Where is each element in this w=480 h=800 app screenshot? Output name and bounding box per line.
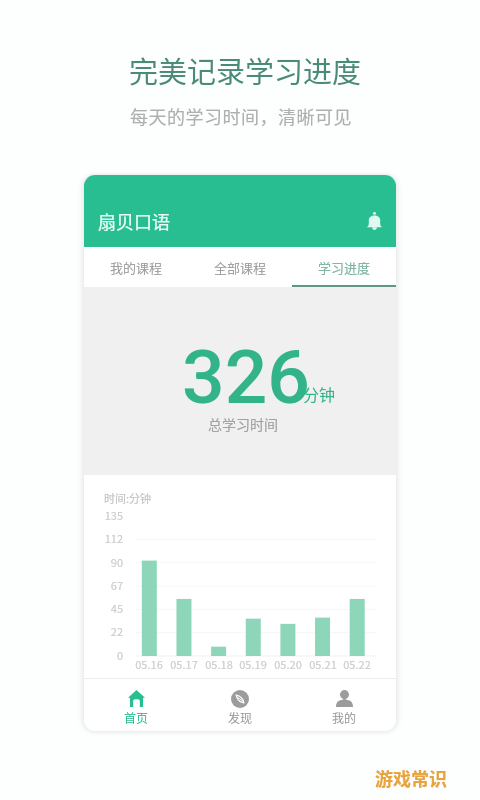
staticText: 326: [182, 333, 310, 421]
staticText: 每天的学习时间，清晰可见: [130, 103, 352, 129]
staticText: 05.22: [339, 656, 375, 672]
button[interactable]: 学习进度: [292, 247, 396, 287]
staticText: 05.20: [270, 656, 306, 672]
staticText: 67: [88, 577, 123, 593]
staticText: 分钟: [303, 382, 336, 405]
button[interactable]: 我的课程: [84, 247, 188, 287]
staticText: 0: [88, 647, 123, 663]
staticText: 05.18: [201, 656, 237, 672]
staticText: 我的: [332, 709, 357, 726]
staticText: 05.19: [235, 656, 271, 672]
staticText: 时间:分钟: [104, 490, 152, 506]
staticText: 90: [88, 554, 123, 570]
staticText: 游戏常识: [375, 765, 447, 791]
staticText: 05.21: [305, 656, 341, 672]
button[interactable]: 我的: [292, 678, 396, 731]
staticText: 学习进度: [318, 258, 371, 277]
staticText: 22: [88, 623, 123, 639]
staticText: 135: [88, 507, 123, 523]
button[interactable]: 首页: [84, 678, 188, 731]
staticText: 05.16: [131, 656, 167, 672]
staticText: 全部课程: [214, 258, 267, 277]
staticText: 扇贝口语: [98, 208, 170, 234]
button[interactable]: Notifications: [360, 207, 389, 236]
staticText: 首页: [124, 709, 149, 726]
button[interactable]: 全部课程: [188, 247, 292, 287]
staticText: 发现: [228, 709, 253, 726]
staticText: 112: [88, 530, 123, 546]
staticText: 45: [88, 600, 123, 616]
staticText: 总学习时间: [208, 414, 278, 434]
staticText: 我的课程: [110, 258, 163, 277]
staticText: 完美记录学习进度: [129, 49, 362, 91]
staticText: 05.17: [166, 656, 202, 672]
button[interactable]: 发现: [188, 678, 292, 731]
